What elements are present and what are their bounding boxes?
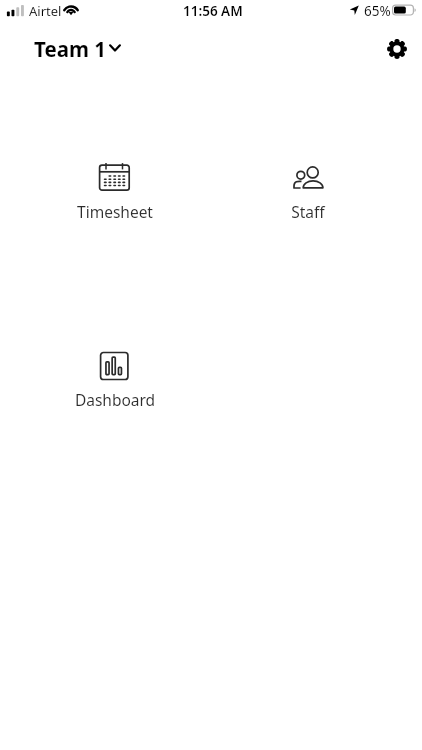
button[interactable]: Team 1 [28, 31, 127, 67]
staticText: Airtel [29, 2, 62, 20]
staticText: 65% [364, 2, 391, 20]
staticText: Team 1 [34, 35, 106, 63]
staticText: 11:56 AM [183, 2, 243, 20]
button[interactable]: Dashboard [40, 336, 190, 423]
staticText: Timesheet [40, 201, 190, 222]
button[interactable]: Timesheet [40, 148, 190, 235]
button[interactable]: Settings [385, 37, 409, 61]
button[interactable]: Staff [233, 151, 383, 235]
staticText: Staff [233, 201, 383, 222]
staticText: Dashboard [40, 389, 190, 410]
